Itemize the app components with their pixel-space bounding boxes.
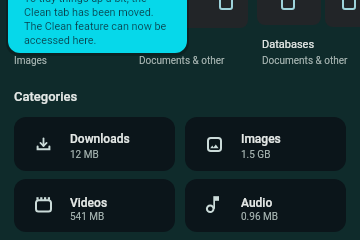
staticText: Documents & other bbox=[139, 55, 225, 67]
staticText: 1.5 GB bbox=[241, 149, 271, 161]
staticText: 541 MB bbox=[70, 211, 105, 223]
button[interactable]: Videos bbox=[14, 179, 175, 232]
staticText: Videos bbox=[70, 196, 108, 210]
staticText: 12 MB bbox=[70, 149, 99, 161]
button[interactable] bbox=[325, 0, 360, 27]
button[interactable]: Downloads bbox=[14, 117, 175, 171]
staticText: To tidy things up a bit, the Clean tab h… bbox=[24, 0, 167, 47]
button[interactable]: Images bbox=[185, 117, 346, 171]
button[interactable] bbox=[257, 0, 321, 25]
staticText: Images bbox=[14, 55, 48, 67]
staticText: Databases bbox=[262, 38, 315, 51]
staticText: Documents & other bbox=[262, 55, 348, 67]
button[interactable]: To tidy things up a bit, the Clean tab h… bbox=[8, 0, 187, 53]
button[interactable]: Audio bbox=[185, 179, 346, 232]
staticText: Categories bbox=[14, 89, 78, 104]
button[interactable] bbox=[138, 0, 248, 28]
staticText: Images bbox=[241, 132, 281, 146]
staticText: 0.96 MB bbox=[241, 211, 278, 223]
staticText: Audio bbox=[241, 196, 273, 210]
staticText: Downloads bbox=[70, 132, 130, 146]
